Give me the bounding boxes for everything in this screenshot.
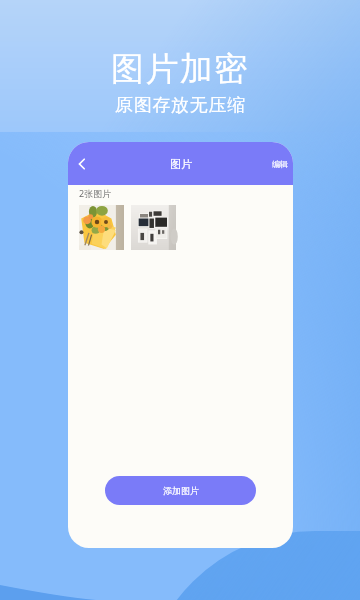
staticText: 图片 <box>170 157 192 171</box>
button[interactable]: Wall photo <box>131 205 176 250</box>
button[interactable]: Back <box>68 150 96 178</box>
button[interactable]: Flower photo <box>79 205 124 250</box>
staticText: 图片加密 <box>111 48 249 90</box>
button[interactable]: 编辑 <box>267 153 293 175</box>
staticText: 添加图片 <box>163 485 199 496</box>
staticText: 原图存放无压缩 <box>115 94 246 117</box>
button[interactable]: 添加图片 <box>105 476 256 505</box>
staticText: 编辑 <box>272 159 288 169</box>
staticText: 2张图片 <box>79 187 112 199</box>
